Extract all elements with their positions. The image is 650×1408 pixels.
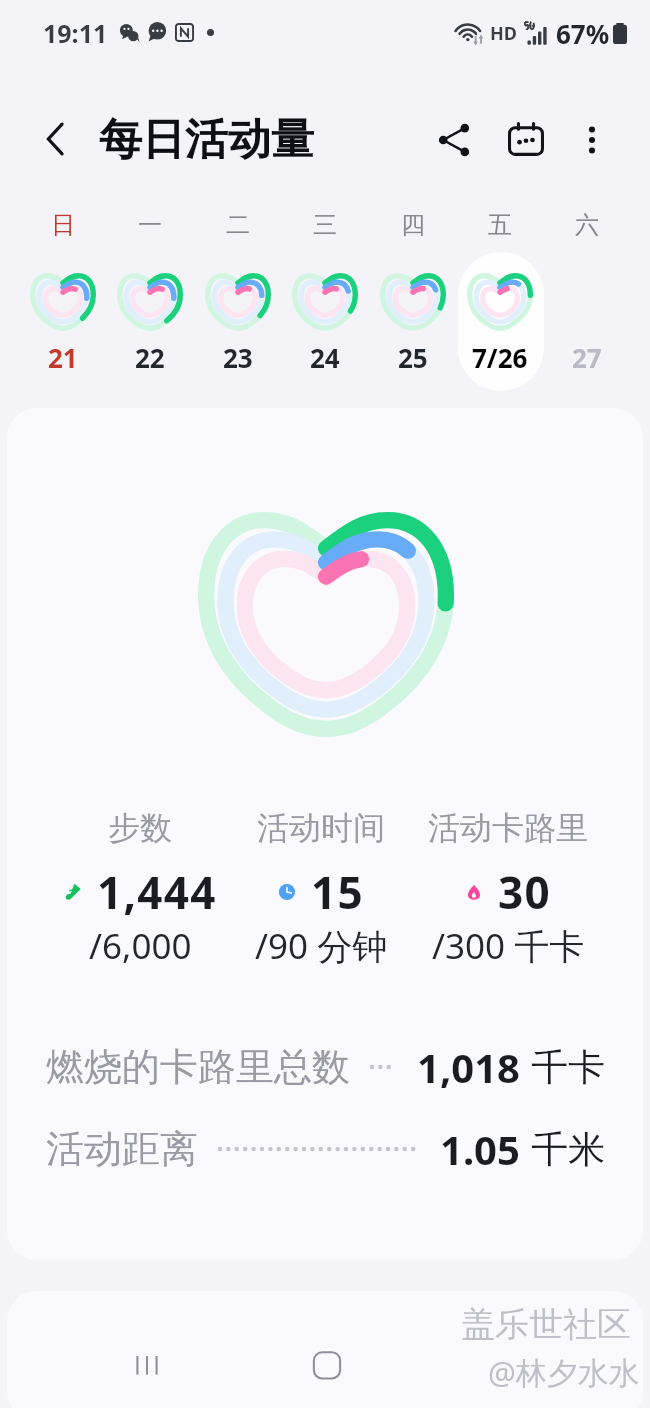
button[interactable] [7,1291,643,1408]
button[interactable]: 步数 [7,408,643,1260]
staticText: 25 [398,340,428,375]
button[interactable]: 日 [20,210,106,395]
button[interactable]: 活动时间 [211,808,431,970]
staticText: 二 [226,210,250,240]
staticText: 千米 [531,1126,605,1173]
staticText: 活动卡路里 [428,808,588,848]
button[interactable]: 三 [282,210,368,395]
staticText: /90 分钟 [255,922,388,970]
staticText: 24 [310,340,340,375]
button[interactable]: 五 [457,210,543,395]
staticText: 23 [223,340,253,375]
staticText: 活动时间 [257,808,385,848]
staticText: 1,018 [417,1040,520,1094]
button[interactable]: More options [563,111,621,169]
staticText: 三 [313,210,337,240]
button[interactable]: 活动距离 [46,1120,605,1178]
button[interactable]: 活动卡路里 [398,808,618,970]
button[interactable]: 二 [195,210,281,395]
staticText: 燃烧的卡路里总数 [46,1043,350,1091]
staticText: 一 [138,210,162,240]
button[interactable]: Recent apps [107,1325,187,1405]
staticText: 19:11 [43,16,108,48]
staticText: /6,000 [89,922,192,970]
button[interactable]: Back [28,111,84,167]
staticText: 1.05 [440,1122,520,1176]
button[interactable]: 步数 [30,808,250,970]
staticText: 千卡 [531,1044,605,1091]
button[interactable]: Back [465,1325,545,1405]
staticText: 7/26 [472,340,528,375]
staticText: 21 [48,340,78,375]
staticText: 六 [575,210,599,240]
staticText: 四 [401,210,425,240]
staticText: 步数 [108,808,172,848]
staticText: 五 [488,210,512,240]
button[interactable]: 四 [370,210,456,395]
button[interactable]: 一 [107,210,193,395]
staticText: 日 [51,210,75,240]
staticText: 30 [498,862,551,922]
staticText: 盖乐世社区 [461,1303,631,1346]
staticText: 67% [556,16,610,50]
staticText: HD [490,21,517,46]
staticText: @林夕水水 [488,1351,640,1393]
button[interactable]: Home [287,1325,367,1405]
staticText: 每日活动量 [99,113,314,167]
button[interactable]: Calendar [497,111,555,169]
staticText: 15 [311,862,364,922]
staticText: 27 [572,340,602,375]
button[interactable]: Share [425,111,483,169]
staticText: 22 [135,340,165,375]
staticText: /300 千卡 [432,922,585,970]
button[interactable]: 六 [544,210,630,395]
staticText: 1,444 [97,862,217,922]
button[interactable]: 燃烧的卡路里总数 [46,1038,605,1096]
staticText: 活动距离 [46,1125,198,1173]
